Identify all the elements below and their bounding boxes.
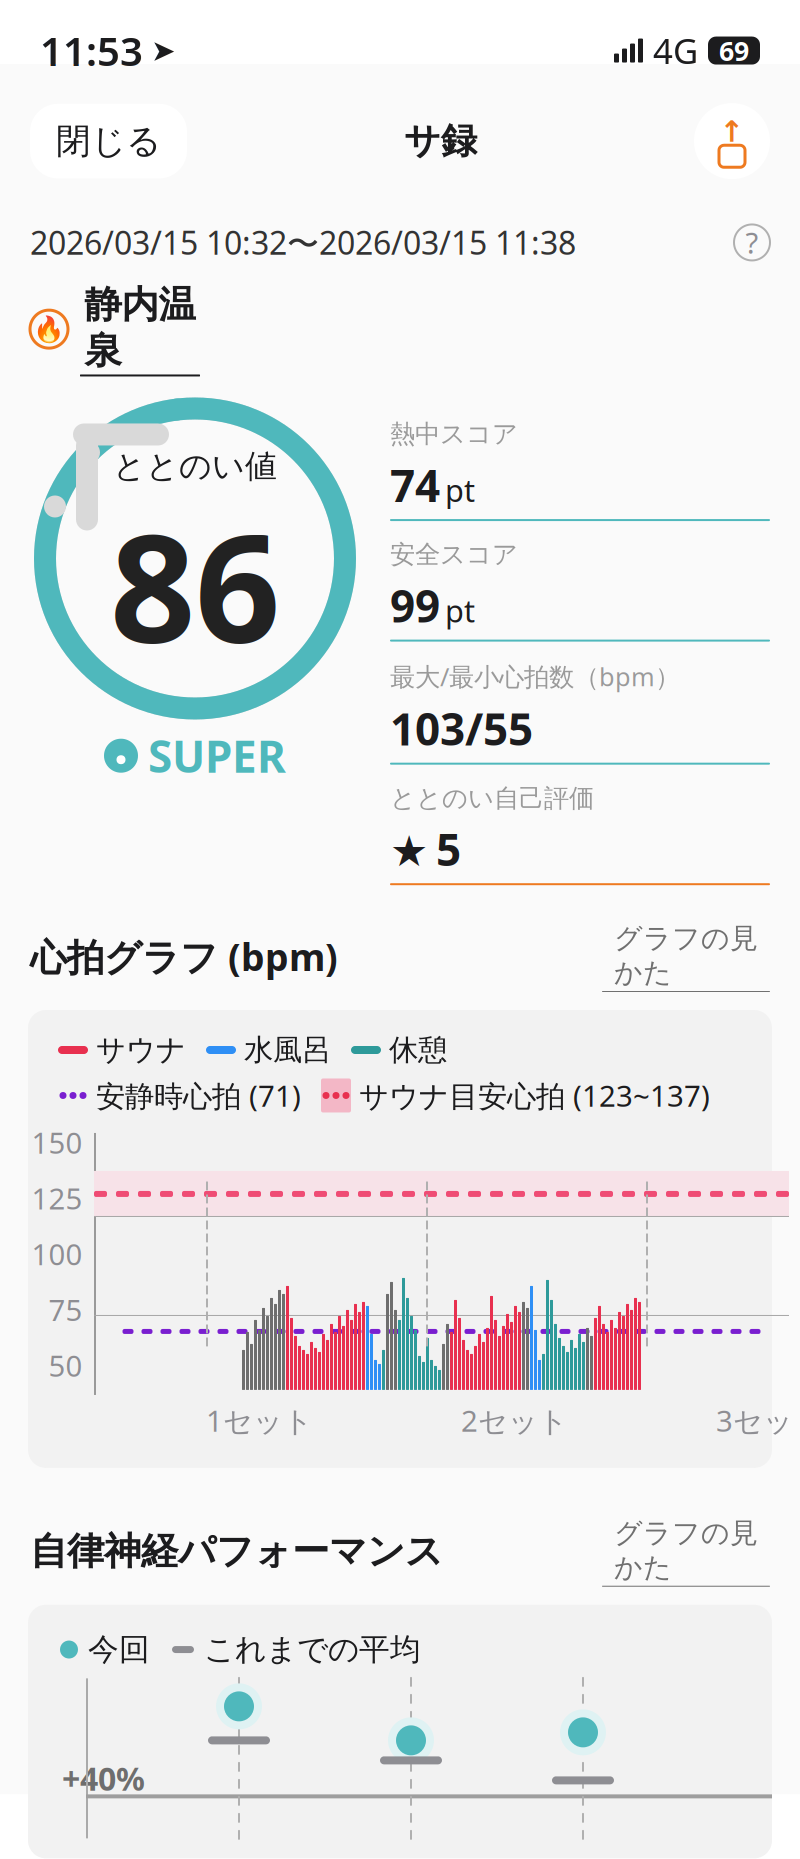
button[interactable]: グラフの見かた	[602, 1516, 770, 1587]
staticText: グラフの見かた	[614, 921, 758, 990]
staticText: SUPER	[148, 726, 286, 785]
staticText: サウナ	[96, 1032, 186, 1068]
staticText: 69	[719, 33, 749, 68]
staticText: 最大/最小心拍数（bpm）	[390, 660, 680, 693]
staticText: 99	[390, 576, 440, 635]
staticText: 熱中スコア	[390, 418, 518, 450]
staticText: 86	[110, 486, 280, 684]
staticText: 1セット	[206, 1401, 313, 1440]
staticText: ?	[745, 223, 758, 262]
staticText: 休憩	[389, 1032, 447, 1068]
staticText: 5	[436, 820, 461, 878]
staticText: pt	[445, 470, 475, 510]
staticText: サウナ目安心拍 (123~137)	[359, 1076, 710, 1115]
staticText: 100	[31, 1234, 82, 1273]
staticText: これまでの平均	[204, 1631, 421, 1668]
staticText: ととのい値	[113, 447, 277, 486]
staticText: 水風呂	[244, 1032, 331, 1068]
staticText: 2026/03/15 10:32〜2026/03/15 11:38	[30, 221, 576, 264]
staticText: サ録	[404, 119, 477, 163]
staticText: ととのい自己評価	[390, 783, 594, 814]
staticText: ★	[390, 827, 428, 875]
staticText: 4G	[653, 27, 698, 73]
staticText: 今回	[88, 1631, 150, 1668]
button[interactable]: 閉じる	[30, 104, 187, 178]
staticText: 11:53	[40, 24, 143, 77]
staticText: 2セット	[461, 1401, 568, 1440]
staticText: 150	[31, 1123, 82, 1162]
button[interactable]: 🔥	[0, 282, 800, 376]
staticText: ➤	[151, 34, 176, 67]
button[interactable]: 共有	[694, 103, 770, 179]
staticText: 心拍グラフ (bpm)	[30, 932, 338, 981]
staticText: 125	[31, 1179, 82, 1218]
staticText: ↑	[719, 115, 744, 148]
staticText: 安全スコア	[390, 539, 518, 570]
staticText: 74	[390, 456, 440, 514]
staticText: 3セット	[716, 1401, 800, 1440]
staticText: 🔥	[33, 315, 65, 344]
staticText: 75	[48, 1290, 82, 1329]
staticText: 50	[48, 1346, 82, 1385]
button[interactable]: ヘルプ	[734, 223, 770, 262]
staticText: pt	[445, 590, 475, 631]
staticText: +40%	[62, 1757, 145, 1800]
button[interactable]: グラフの見かた	[602, 921, 770, 992]
staticText: グラフの見かた	[614, 1516, 758, 1585]
staticText: 自律神経パフォーマンス	[30, 1528, 443, 1574]
staticText: 103/55	[390, 699, 533, 758]
staticText: 閉じる	[56, 120, 161, 162]
staticText: 静内温泉	[84, 282, 195, 373]
staticText: 安静時心拍 (71)	[96, 1076, 301, 1115]
